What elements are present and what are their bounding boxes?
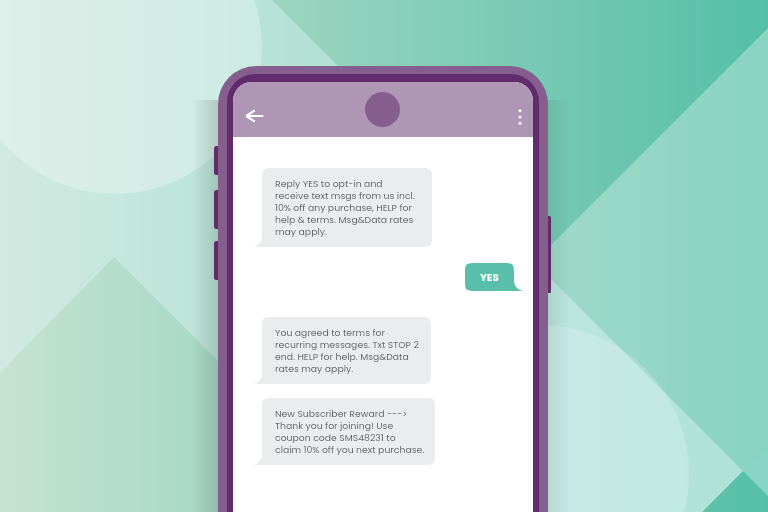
staticText: New Subscriber Reward ---> Thank you for…	[275, 407, 425, 456]
staticText: You agreed to terms for recurring messag…	[275, 326, 419, 375]
button[interactable]: Reply YES to opt-in and receive text msg…	[262, 168, 432, 247]
button[interactable]: YES	[465, 263, 514, 291]
button[interactable]: Back	[238, 99, 272, 133]
staticText: Reply YES to opt-in and receive text msg…	[275, 177, 415, 238]
staticText: YES	[465, 270, 514, 284]
button[interactable]: You agreed to terms for recurring messag…	[262, 317, 431, 384]
button[interactable]: More options	[506, 103, 533, 131]
button[interactable]: New Subscriber Reward ---> Thank you for…	[262, 398, 435, 465]
